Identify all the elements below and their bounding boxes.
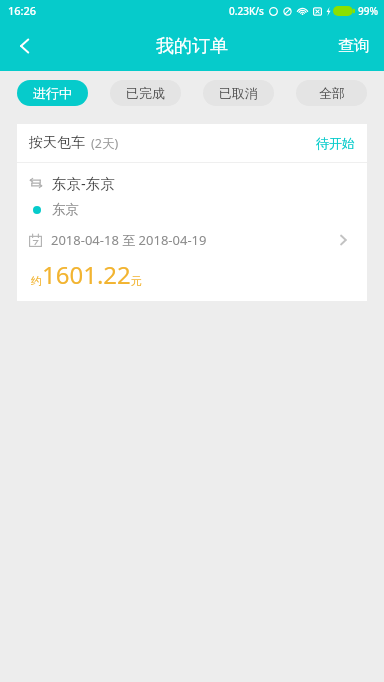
staticText: 1601.22: [42, 258, 131, 291]
staticText: 东京: [52, 201, 79, 218]
button[interactable]: 按天包车: [17, 124, 367, 301]
button[interactable]: 已取消: [203, 80, 274, 106]
button[interactable]: 全部: [296, 80, 367, 106]
staticText: 99%: [358, 4, 378, 18]
staticText: 东京-东京: [52, 173, 115, 193]
staticText: 已完成: [126, 85, 165, 101]
staticText: 查询: [338, 36, 370, 56]
button[interactable]: 进行中: [17, 80, 88, 106]
staticText: (2天): [91, 135, 119, 152]
staticText: 进行中: [33, 85, 72, 101]
staticText: 元: [131, 274, 142, 288]
staticText: 全部: [319, 85, 345, 101]
button[interactable]: View order details: [331, 228, 355, 252]
staticText: 已取消: [219, 85, 258, 101]
staticText: 16:26: [8, 3, 37, 18]
staticText: 0.23K/s: [229, 4, 264, 18]
button[interactable]: 查询: [324, 21, 384, 71]
staticText: 待开始: [316, 135, 355, 151]
button[interactable]: 已完成: [110, 80, 181, 106]
staticText: 2018-04-18 至 2018-04-19: [51, 231, 207, 249]
button[interactable]: Back: [0, 21, 50, 71]
staticText: 我的订单: [156, 35, 228, 58]
staticText: 约: [31, 274, 42, 288]
staticText: 按天包车: [29, 134, 85, 152]
